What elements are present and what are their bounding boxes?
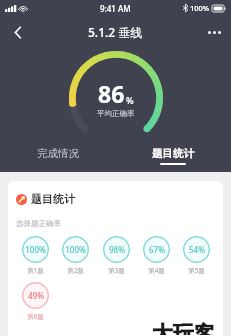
staticText: 大玩客 xyxy=(152,322,215,336)
staticText: 第4题 xyxy=(148,266,165,275)
staticText: 大玩客 xyxy=(151,321,214,335)
staticText: 大玩客 xyxy=(153,320,216,334)
staticText: 大玩客 xyxy=(152,320,215,334)
button[interactable]: 49% xyxy=(16,282,54,321)
staticText: 题目统计 xyxy=(152,147,194,160)
staticText: 第6题 xyxy=(27,312,44,321)
button[interactable]: 题目统计 xyxy=(115,140,231,172)
button[interactable]: 67% xyxy=(137,236,175,275)
staticText: 大玩客 xyxy=(153,322,216,336)
staticText: 平均正确率 xyxy=(97,109,135,118)
staticText: 选择题正确率 xyxy=(16,219,61,228)
staticText: 49% xyxy=(28,290,44,301)
staticText: 第2题 xyxy=(67,266,84,275)
staticText: % xyxy=(126,94,134,106)
button[interactable]: 完成情况 xyxy=(0,140,115,172)
staticText: 第3题 xyxy=(108,266,125,275)
staticText: 大玩客 xyxy=(152,321,215,335)
staticText: 86 xyxy=(98,78,125,109)
button[interactable]: More options xyxy=(197,16,231,48)
staticText: 第1题 xyxy=(27,266,44,275)
staticText: 题目统计 xyxy=(31,192,75,206)
button[interactable]: Back xyxy=(0,16,34,48)
button[interactable]: 100% xyxy=(16,236,54,275)
staticText: 5.1.2 垂线 xyxy=(88,24,143,40)
staticText: 67% xyxy=(149,244,165,255)
staticText: 大玩客 xyxy=(151,320,214,334)
staticText: 第5题 xyxy=(188,266,205,275)
staticText: 大玩客 xyxy=(151,322,214,336)
staticText: 9:41 AM xyxy=(100,3,131,14)
staticText: 100% xyxy=(190,3,210,13)
staticText: 98% xyxy=(109,244,125,255)
button[interactable]: 54% xyxy=(177,236,215,275)
staticText: 54% xyxy=(189,244,205,255)
staticText: 100% xyxy=(25,244,46,255)
button[interactable]: 100% xyxy=(56,236,94,275)
staticText: 100% xyxy=(65,244,86,255)
staticText: 完成情况 xyxy=(37,147,79,160)
button[interactable]: 98% xyxy=(97,236,135,275)
staticText: 大玩客 xyxy=(153,321,216,335)
